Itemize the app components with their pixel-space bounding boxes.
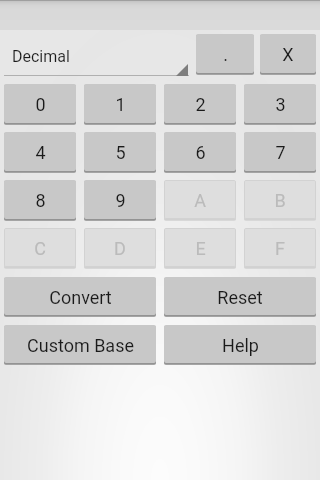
staticText: A: [194, 190, 206, 211]
staticText: 8: [35, 190, 46, 211]
staticText: X: [282, 44, 294, 65]
button[interactable]: Delete: [260, 34, 316, 73]
button[interactable]: 1: [84, 84, 156, 123]
staticText: 6: [195, 142, 206, 163]
button[interactable]: D: [84, 228, 156, 267]
button[interactable]: Decimal point: [196, 34, 254, 73]
button[interactable]: 3: [244, 84, 316, 123]
button[interactable]: Convert: [4, 277, 156, 315]
staticText: D: [114, 238, 126, 259]
staticText: 5: [115, 142, 126, 163]
button[interactable]: 6: [164, 132, 236, 171]
button[interactable]: 4: [4, 132, 76, 171]
button[interactable]: Custom Base: [4, 325, 156, 363]
staticText: Decimal: [12, 47, 70, 66]
staticText: 4: [35, 142, 46, 163]
staticText: .: [223, 44, 228, 65]
staticText: F: [275, 238, 285, 259]
button[interactable]: 2: [164, 84, 236, 123]
button[interactable]: Reset: [164, 277, 316, 315]
button[interactable]: 8: [4, 180, 76, 219]
staticText: Reset: [217, 287, 263, 308]
staticText: 0: [35, 94, 46, 115]
button[interactable]: 5: [84, 132, 156, 171]
staticText: B: [274, 190, 286, 211]
button[interactable]: E: [164, 228, 236, 267]
button[interactable]: 7: [244, 132, 316, 171]
button[interactable]: Source base: Decimal: [4, 36, 189, 76]
button[interactable]: F: [244, 228, 316, 267]
staticText: E: [195, 238, 206, 259]
staticText: Help: [222, 335, 259, 356]
staticText: 7: [275, 142, 286, 163]
staticText: 3: [275, 94, 286, 115]
button[interactable]: 9: [84, 180, 156, 219]
staticText: Convert: [49, 287, 112, 308]
staticText: 1: [115, 94, 126, 115]
button[interactable]: A: [164, 180, 236, 219]
staticText: 2: [195, 94, 206, 115]
button[interactable]: Help: [164, 325, 316, 363]
staticText: C: [34, 238, 46, 259]
button[interactable]: C: [4, 228, 76, 267]
staticText: 9: [115, 190, 126, 211]
staticText: Custom Base: [27, 335, 134, 356]
button[interactable]: B: [244, 180, 316, 219]
button[interactable]: 0: [4, 84, 76, 123]
